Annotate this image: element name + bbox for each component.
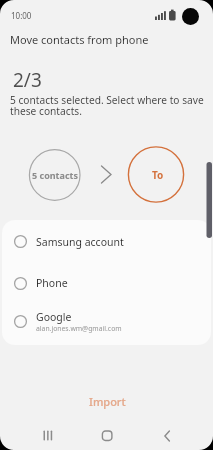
button[interactable] (36, 424, 60, 448)
button[interactable]: Phone (2, 263, 211, 303)
button[interactable]: To (130, 147, 186, 203)
button[interactable]: Samsung account (2, 220, 211, 263)
staticText: Phone (36, 276, 68, 290)
staticText: 10:00 (11, 10, 32, 21)
staticText: alan.jones.wm@gmail.com (36, 324, 122, 333)
staticText: To (152, 168, 164, 182)
button[interactable] (95, 424, 119, 448)
staticText: 5 contacts (32, 169, 78, 181)
staticText: Google (36, 310, 72, 324)
staticText: 5 contacts selected. Select where to sav… (10, 93, 204, 107)
staticText: Import (89, 394, 126, 409)
staticText: Samsung account (36, 235, 124, 249)
button[interactable] (155, 424, 179, 448)
staticText: 2/3 (13, 67, 42, 93)
staticText: Move contacts from phone (10, 32, 149, 47)
button[interactable]: 5 contacts (29, 149, 80, 200)
staticText: these contacts. (10, 104, 82, 118)
button[interactable]: Google (2, 303, 211, 339)
button[interactable]: Import (67, 392, 147, 411)
